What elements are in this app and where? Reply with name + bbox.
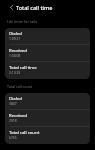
button[interactable]: Total call time: [5, 62, 90, 79]
staticText: 6765: [9, 135, 17, 139]
button[interactable]: Total call count: [5, 127, 90, 144]
staticText: 2918: [9, 118, 17, 122]
staticText: 2:13:29: [9, 70, 21, 74]
staticText: Total call count: [9, 129, 40, 135]
staticText: Dialed: [9, 30, 22, 36]
staticText: Total call time: [16, 4, 53, 11]
button[interactable]: Dialed: [5, 28, 90, 45]
staticText: Received: [9, 47, 27, 53]
staticText: 1:09:21: [9, 36, 21, 40]
staticText: 3847: [9, 101, 17, 105]
staticText: Dialed: [9, 95, 22, 101]
staticText: Total call count: [7, 84, 33, 89]
button[interactable]: Received: [5, 110, 90, 127]
button[interactable]: Received: [5, 45, 90, 62]
staticText: Life timer for calls: [7, 19, 38, 24]
staticText: 1:04:08: [9, 53, 21, 57]
button[interactable]: Dialed: [5, 93, 90, 110]
staticText: Received: [9, 112, 27, 118]
staticText: Total call time: [9, 64, 37, 70]
button[interactable]: Back: [9, 1, 17, 14]
